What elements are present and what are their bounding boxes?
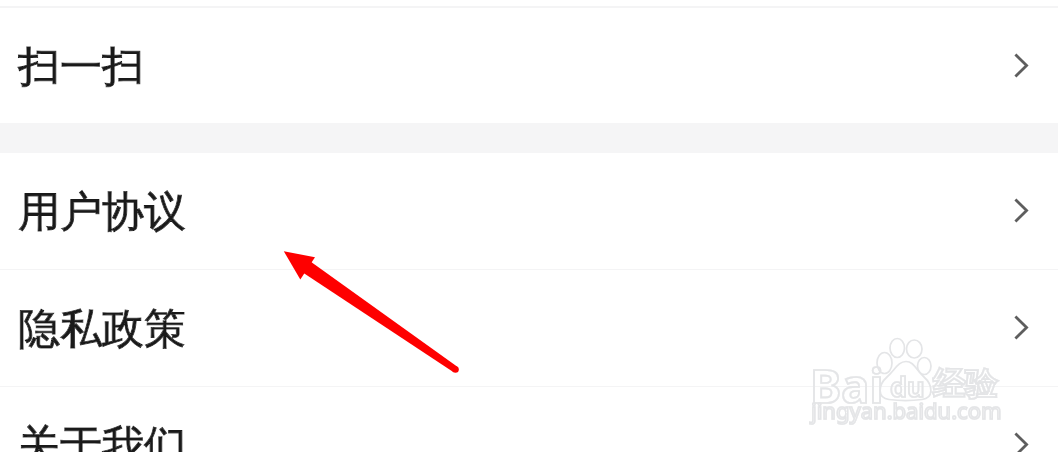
button[interactable]: 用户协议 — [0, 153, 1058, 268]
other: Open — [1014, 432, 1028, 452]
staticText: 关于我们 — [18, 420, 186, 452]
staticText: 隐私政策 — [18, 303, 186, 356]
staticText: 用户协议 — [18, 186, 186, 239]
other: Open — [1014, 315, 1028, 340]
staticText: 隐私政策 — [18, 303, 186, 356]
staticText: 经验 — [933, 364, 997, 404]
other: Open — [1014, 53, 1028, 78]
staticText: 关于我们 — [18, 420, 186, 452]
staticText: 扫一扫 — [18, 41, 144, 94]
staticText: 扫一扫 — [18, 41, 144, 94]
staticText: Bai — [810, 353, 884, 417]
button[interactable]: 关于我们 — [0, 386, 1058, 452]
staticText: jingyan.baidu.com — [811, 395, 1002, 425]
staticText: 用户协议 — [18, 186, 186, 239]
button[interactable]: 扫一扫 — [0, 7, 1058, 123]
staticText: du — [890, 368, 925, 405]
other: Open — [1014, 198, 1028, 223]
button[interactable]: 隐私政策 — [0, 269, 1058, 385]
